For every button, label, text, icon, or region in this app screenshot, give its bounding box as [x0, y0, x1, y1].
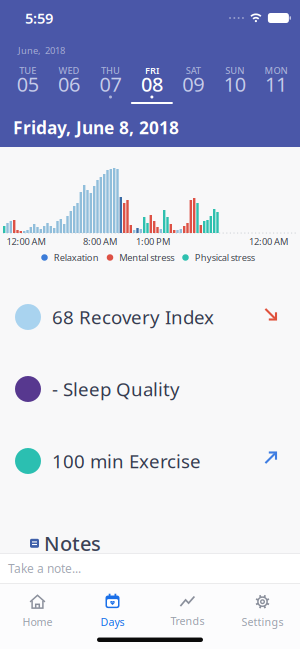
button[interactable]: TUE	[7, 64, 48, 104]
button[interactable]: Take a note...	[0, 553, 300, 583]
staticText: 100 min Exercise	[52, 449, 201, 473]
staticText: TUE	[19, 64, 36, 77]
staticText: FRI	[145, 64, 159, 77]
staticText: - Sleep Quality	[52, 377, 180, 401]
staticText: 10	[224, 71, 246, 97]
staticText: Physical stress	[195, 251, 255, 264]
staticText: Home	[22, 615, 52, 629]
staticText: 05	[17, 71, 39, 97]
staticText: SAT	[186, 64, 201, 77]
staticText: THU	[101, 64, 120, 77]
staticText: Friday, June 8, 2018	[13, 116, 179, 139]
button[interactable]: SUN	[214, 64, 255, 104]
staticText: Relaxation	[54, 251, 99, 264]
staticText: Settings	[241, 615, 283, 629]
button[interactable]: Trends	[150, 595, 225, 628]
staticText: Mental stress	[119, 251, 174, 264]
button[interactable]: FRI	[131, 64, 173, 104]
button[interactable]: MON	[255, 64, 297, 104]
staticText: 5:59	[25, 8, 53, 28]
staticText: 11	[265, 71, 287, 97]
staticText: 1:00 PM	[136, 235, 170, 248]
staticText: 09	[182, 71, 204, 97]
staticText: 08	[141, 71, 163, 97]
staticText: Take a note...	[8, 560, 81, 576]
button[interactable]: 100 min Exercise	[0, 425, 300, 497]
staticText: Notes	[44, 530, 101, 557]
staticText: Days	[100, 615, 124, 629]
staticText: SUN	[225, 64, 244, 77]
button[interactable]: Home	[0, 594, 75, 629]
button[interactable]: 68 Recovery Index	[0, 281, 300, 353]
button[interactable]: - Sleep Quality	[0, 353, 300, 425]
button[interactable]: Settings	[225, 594, 300, 629]
staticText: Trends	[170, 614, 204, 628]
staticText: MON	[265, 64, 288, 77]
staticText: 12:00 AM	[249, 235, 288, 248]
button[interactable]: WED	[48, 64, 90, 104]
staticText: 68 Recovery Index	[52, 305, 214, 329]
button[interactable]: THU	[90, 64, 131, 104]
button[interactable]: Days	[75, 594, 150, 629]
staticText: 06	[58, 71, 80, 97]
staticText: 12:00 AM	[6, 235, 45, 248]
staticText: WED	[59, 64, 80, 77]
button[interactable]: SAT	[173, 64, 214, 104]
staticText: June, 2018	[18, 44, 65, 57]
staticText: 8:00 AM	[83, 235, 117, 248]
staticText: 07	[99, 71, 121, 97]
